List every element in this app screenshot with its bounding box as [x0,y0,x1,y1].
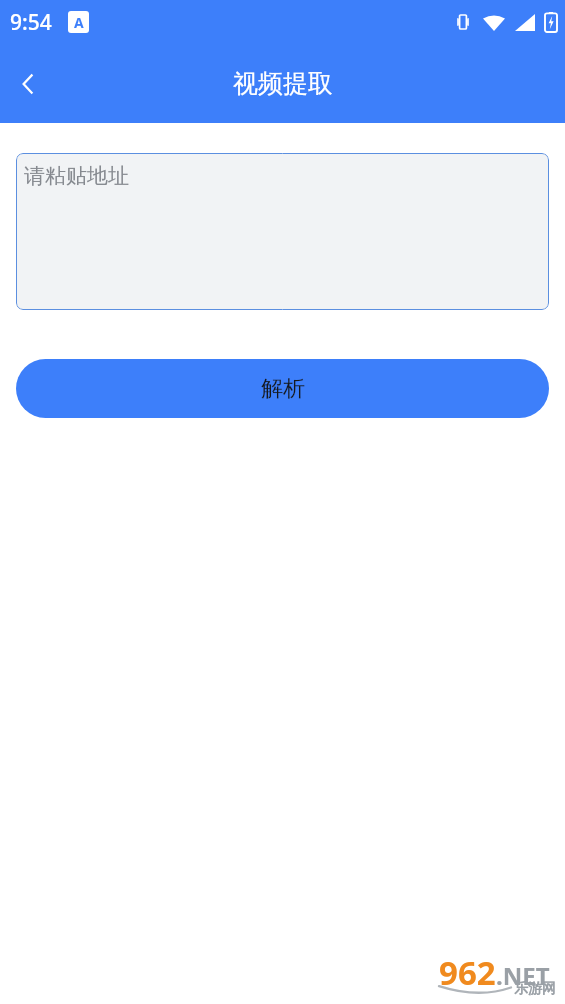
staticText: 视频提取 [233,68,333,99]
staticText: 请粘贴地址 [24,163,129,189]
staticText: .NET [496,959,550,992]
button[interactable]: 解析 [16,359,549,418]
staticText: 9:54 [10,8,52,37]
staticText: 乐游网 [514,980,556,998]
button[interactable]: 请粘贴地址 [16,153,549,310]
staticText: 962 [439,950,496,995]
staticText: 解析 [261,375,305,403]
staticText: A [74,13,84,32]
button[interactable]: Back [0,56,56,112]
